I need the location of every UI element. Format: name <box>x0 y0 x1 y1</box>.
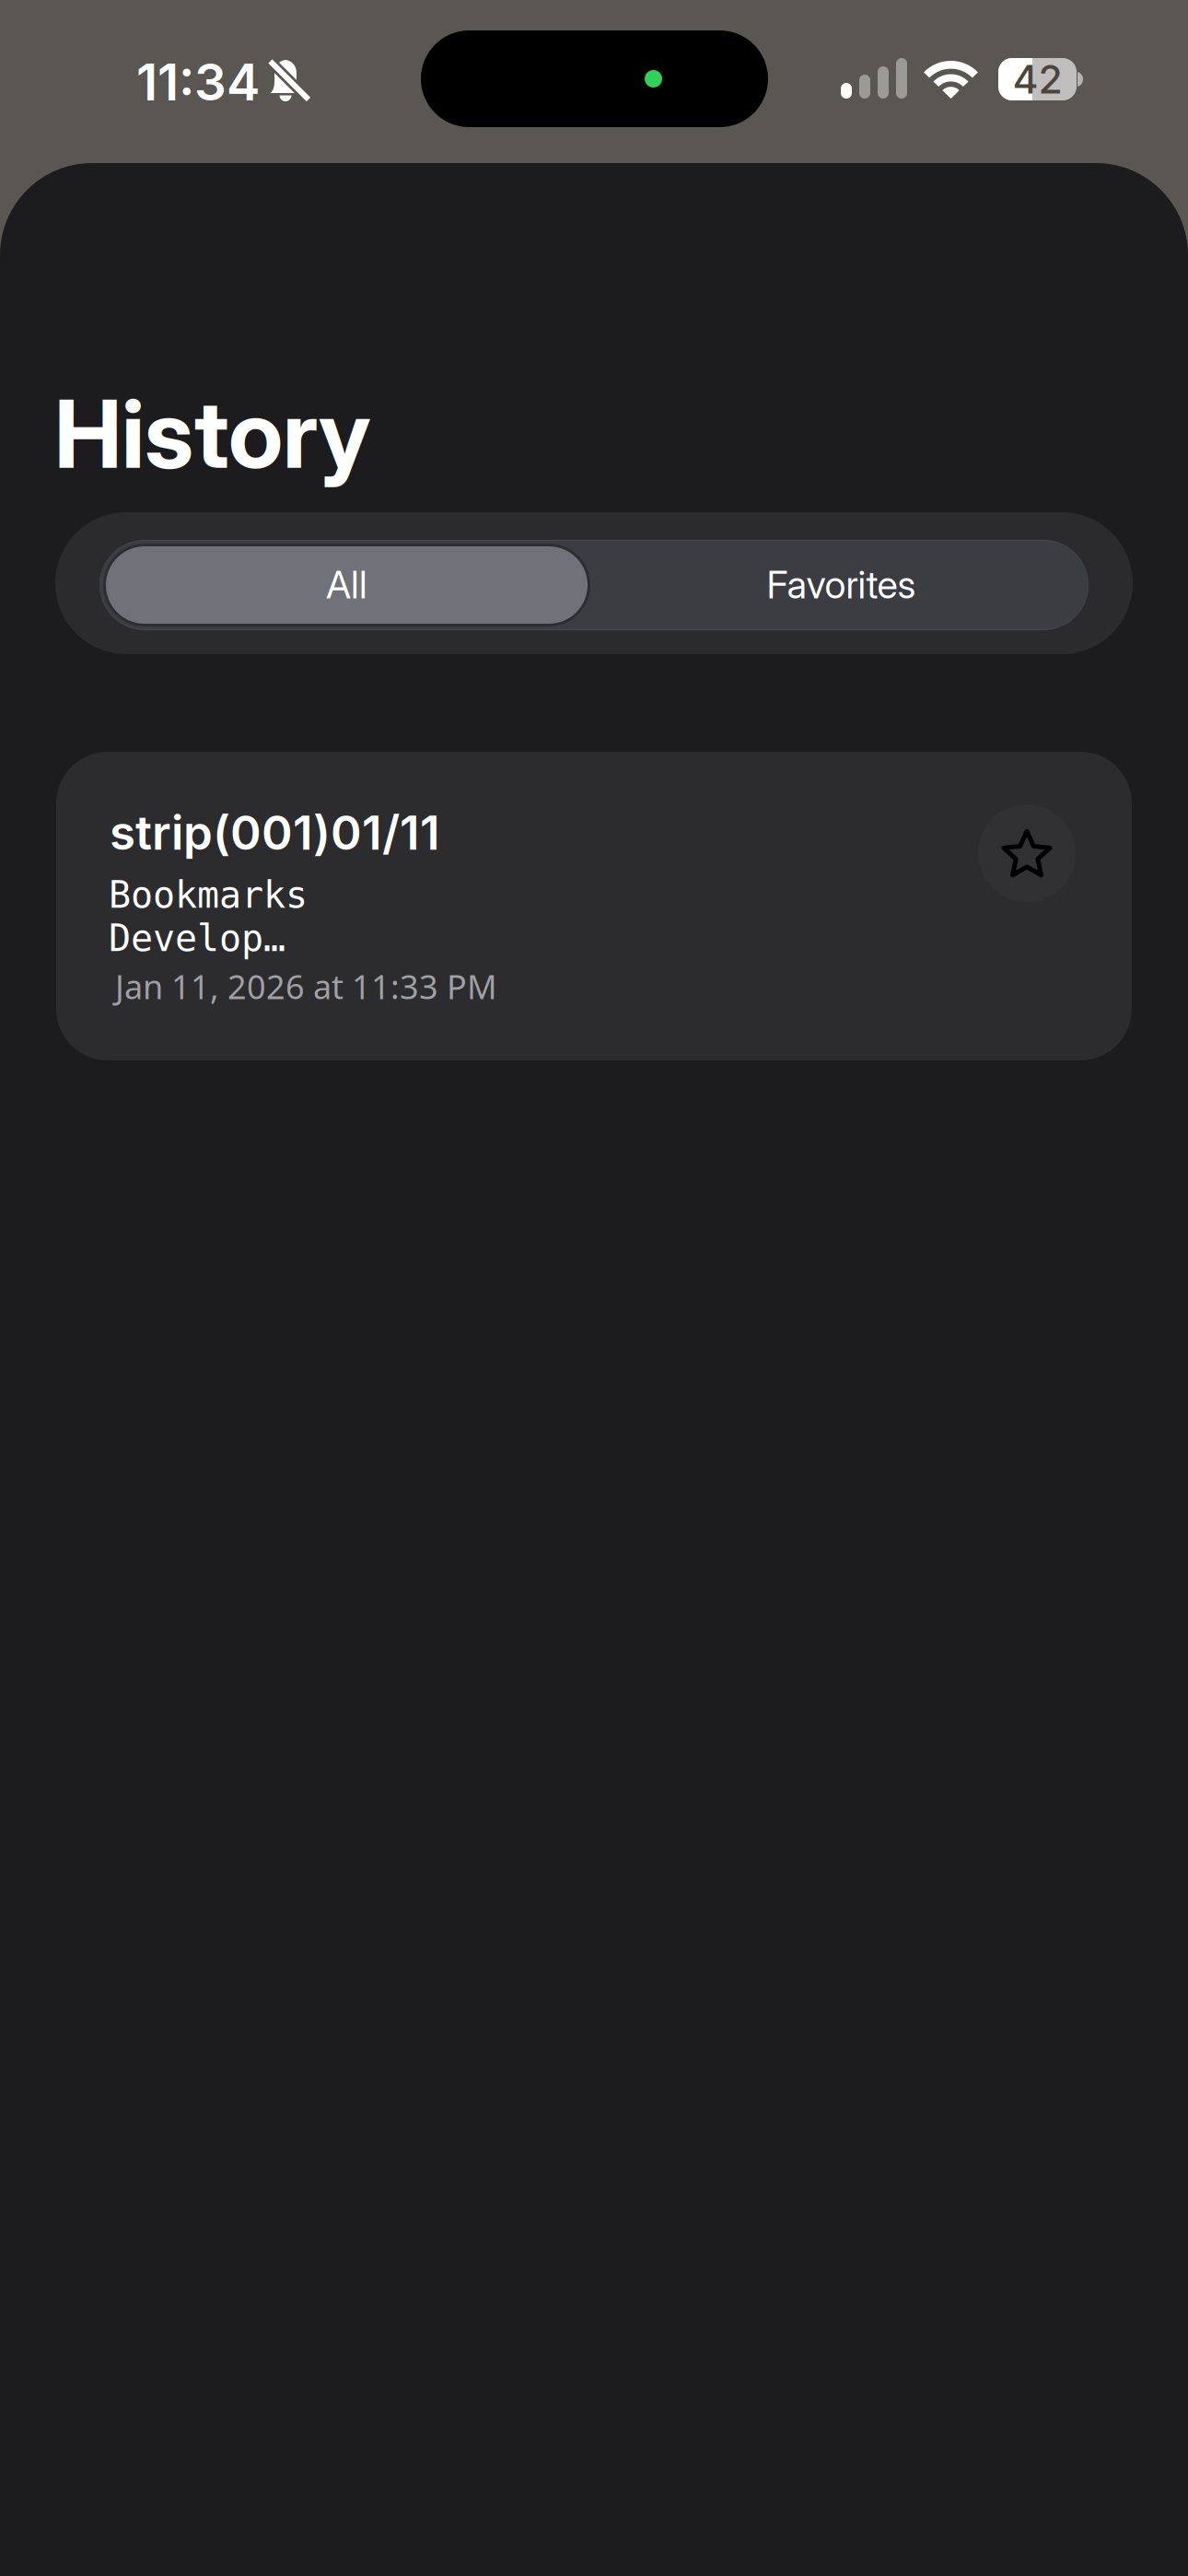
staticText: Favorites <box>767 562 916 608</box>
staticText: Jan 11, 2026 at 11:33 PM <box>115 964 497 1009</box>
staticText: All <box>326 562 367 608</box>
staticText: History <box>54 377 370 491</box>
staticText: 11:34 <box>136 52 260 112</box>
staticText: strip(001)01/11 <box>110 804 440 861</box>
staticText: Develop… <box>109 917 285 960</box>
button[interactable]: Favorite <box>978 804 1076 902</box>
button[interactable]: strip(001)01/11 <box>56 752 1132 1060</box>
staticText: Bookmarks <box>109 873 308 916</box>
button[interactable]: Favorites <box>594 540 1089 629</box>
button[interactable]: All <box>99 540 594 629</box>
staticText: 42 <box>1013 55 1062 103</box>
